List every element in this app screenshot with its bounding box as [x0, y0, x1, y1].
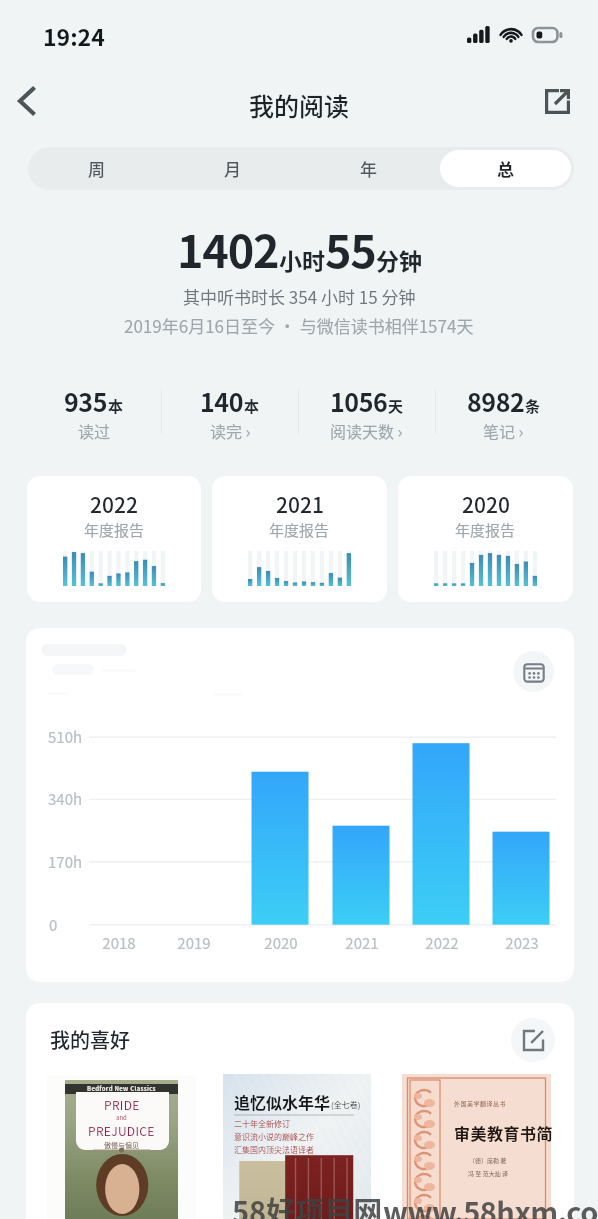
staticText: 2022 [425, 932, 459, 954]
staticText: 读完 › [210, 419, 251, 442]
staticText: 汇集国内顶尖法语译者 [234, 1144, 314, 1156]
button[interactable]: 周 [28, 147, 164, 190]
staticText: Bedford New Classics [87, 1084, 156, 1093]
staticText: 读过 [78, 419, 111, 442]
staticText: 阅读天数 › [330, 419, 403, 442]
staticText: 周 [88, 156, 105, 181]
staticText: 二十年全新修订 [234, 1118, 290, 1130]
staticText: 年度报告 [269, 519, 330, 541]
staticText: 0 [49, 914, 58, 936]
staticText: 340h [48, 788, 83, 810]
button[interactable]: Calendar [513, 651, 554, 692]
staticText: www.58hxm.com [383, 1189, 598, 1219]
button[interactable]: Share [536, 80, 579, 123]
staticText: 8982 [467, 383, 525, 419]
staticText: 510h [48, 726, 83, 748]
staticText: 我的阅读 [249, 87, 350, 123]
staticText: 2021 [276, 489, 324, 519]
button[interactable]: 935 [26, 383, 162, 442]
button[interactable]: 追忆似水年华 [223, 1074, 371, 1219]
button[interactable]: Bedford New Classics [47, 1074, 196, 1219]
staticText: 月 [224, 156, 241, 181]
staticText: 58好项目网 [232, 1189, 383, 1219]
button[interactable]: 外国美学翻译丛书 [402, 1074, 551, 1219]
button[interactable]: 8982 [435, 383, 572, 442]
staticText: 其中听书时长 354 小时 15 分钟 [183, 284, 416, 309]
button[interactable]: Edit [511, 1018, 555, 1062]
staticText: 笔记 › [483, 419, 524, 442]
staticText: 年 [360, 156, 377, 181]
staticText: 140 [200, 383, 244, 419]
staticText: 2020 [462, 489, 510, 519]
staticText: 年度报告 [455, 519, 516, 541]
staticText: 意识流小说的巅峰之作 [234, 1131, 314, 1143]
staticText: and [116, 1113, 127, 1122]
staticText: 2019 [177, 932, 211, 954]
staticText: 追忆似水年华 [234, 1090, 331, 1113]
staticText: 傲慢与偏见 [104, 1140, 139, 1150]
staticText: 2020 [264, 932, 298, 954]
button[interactable]: 年 [300, 147, 437, 190]
staticText: 天 [388, 395, 404, 417]
staticText: 本 [244, 395, 260, 417]
button[interactable]: 140 [162, 383, 298, 442]
staticText: 2019年6月16日至今 · 与微信读书相伴1574天 [124, 313, 474, 338]
staticText: 935 [64, 383, 108, 419]
button[interactable]: 2022 [27, 476, 201, 602]
staticText: PRIDE [104, 1096, 140, 1113]
button[interactable]: 1056 [298, 383, 435, 442]
staticText: 我的喜好 [50, 1025, 130, 1054]
staticText: 总 [497, 156, 514, 181]
button[interactable]: 2020 [398, 476, 573, 602]
staticText: 55 [325, 216, 376, 281]
staticText: 小时 [279, 243, 325, 276]
staticText: 170h [48, 851, 83, 873]
staticText: 2021 [345, 932, 379, 954]
staticText: 1056 [330, 383, 388, 419]
staticText: 2022 [90, 489, 138, 519]
staticText: 2023 [505, 932, 539, 954]
staticText: 本 [108, 395, 124, 417]
staticText: 年度报告 [84, 519, 145, 541]
staticText: 2018 [102, 932, 136, 954]
button[interactable]: 2021 [212, 476, 387, 602]
staticText: 冯 至 范大灿 译 [468, 1169, 509, 1178]
staticText: 条 [525, 395, 541, 417]
staticText: 外国美学翻译丛书 [454, 1099, 507, 1108]
staticText: (全七卷) [331, 1099, 361, 1111]
staticText: 19:24 [43, 19, 105, 52]
staticText: 〔德〕席勒 著 [469, 1156, 507, 1165]
button[interactable]: 月 [164, 147, 300, 190]
button[interactable]: Back [3, 78, 49, 124]
staticText: 分钟 [376, 243, 422, 276]
staticText: 1402 [177, 216, 279, 281]
staticText: 审美教育书简 [454, 1121, 554, 1144]
button[interactable]: 总 [440, 150, 571, 187]
staticText: PREJUDICE [88, 1122, 155, 1139]
